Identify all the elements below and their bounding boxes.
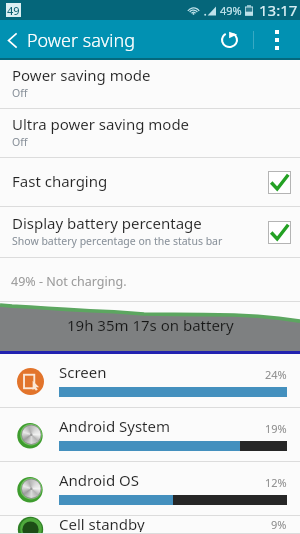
staticText: Off [12,86,28,100]
button[interactable]: Android OS [0,462,300,516]
staticText: Cell standby [59,514,145,532]
staticText: Ultra power saving mode [12,114,190,134]
button[interactable]: Ultra power saving mode [0,109,300,158]
staticText: 19h 35m 17s on battery [67,315,234,335]
staticText: Off [12,135,28,149]
button[interactable]: Fast charging [0,158,300,207]
button[interactable]: Cell standby [0,516,300,534]
staticText: 19% [265,421,287,436]
staticText: Power saving mode [12,65,151,85]
staticText: 24% [265,367,287,382]
button[interactable]: Display battery percentage [0,207,300,258]
other: Navigate up [7,33,18,48]
button[interactable]: More options [254,20,300,60]
staticText: 12% [265,475,287,490]
staticText: 49 [7,3,20,17]
staticText: Display battery percentage [12,213,202,233]
staticText: Android System [59,416,171,436]
staticText: Screen [59,362,107,382]
button[interactable]: Android System [0,408,300,462]
staticText: Power saving [27,28,135,53]
staticText: 49% - Not charging. [11,273,127,290]
staticText: 9% [271,517,287,532]
staticText: Show battery percentage on the status ba… [12,234,223,248]
staticText: Android OS [59,470,139,490]
button[interactable]: Refresh [205,20,253,60]
staticText: 49% [220,3,242,18]
staticText: 13:17 [259,0,298,20]
button[interactable]: Screen [0,354,300,408]
button[interactable]: Power saving mode [0,60,300,109]
staticText: Fast charging [12,171,108,191]
button[interactable]: Navigate up [0,20,141,60]
